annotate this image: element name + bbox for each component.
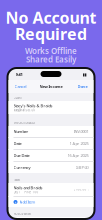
staticText: Date <box>13 141 21 146</box>
staticText: Nails and Braids <box>13 185 42 190</box>
staticText: Cancel <box>14 84 26 89</box>
staticText: + <box>14 199 16 205</box>
staticText: Works Offline <box>25 45 77 56</box>
staticText: Due Date <box>13 153 29 158</box>
button[interactable]: Number <box>8 126 93 137</box>
staticText: 16 Apr 2025 <box>67 153 88 158</box>
button[interactable]: + <box>8 197 93 207</box>
staticText: NOTICE/TERMS <box>13 212 30 216</box>
staticText: INV-0001 <box>73 129 88 134</box>
staticText: 1 Apr 2025 <box>69 141 88 146</box>
staticText: Done <box>77 84 87 89</box>
staticText: GBP (£) <box>75 165 88 170</box>
button[interactable]: Done <box>75 82 89 91</box>
staticText: stacy@nails.co.uk <box>13 108 34 112</box>
staticText: INVOICE DETAILS <box>13 121 34 125</box>
button[interactable]: Date <box>8 138 93 149</box>
staticText: ITEMS <box>13 178 19 182</box>
staticText: No Account <box>5 7 96 28</box>
button[interactable]: Cancel <box>12 82 28 91</box>
staticText: ▮▮ <box>82 72 86 77</box>
staticText: Shared Easily <box>26 54 76 65</box>
button[interactable]: Due Date <box>8 150 93 161</box>
staticText: Number <box>13 129 28 134</box>
staticText: Currency <box>13 165 30 170</box>
staticText: £100.00 <box>73 188 86 191</box>
staticText: Qty 1 Price 100 <box>13 190 38 194</box>
staticText: 9:41 <box>15 72 22 77</box>
button[interactable]: Currency <box>8 162 93 173</box>
staticText: Required <box>15 23 87 44</box>
staticText: Stacy's Nails & Braids <box>13 103 52 108</box>
staticText: New Income <box>39 84 62 89</box>
button[interactable]: Nails and Braids <box>8 183 93 196</box>
staticText: CLIENT <box>13 96 21 100</box>
staticText: Add Item <box>19 199 35 205</box>
button[interactable]: Stacy's Nails & Braids <box>8 101 93 114</box>
